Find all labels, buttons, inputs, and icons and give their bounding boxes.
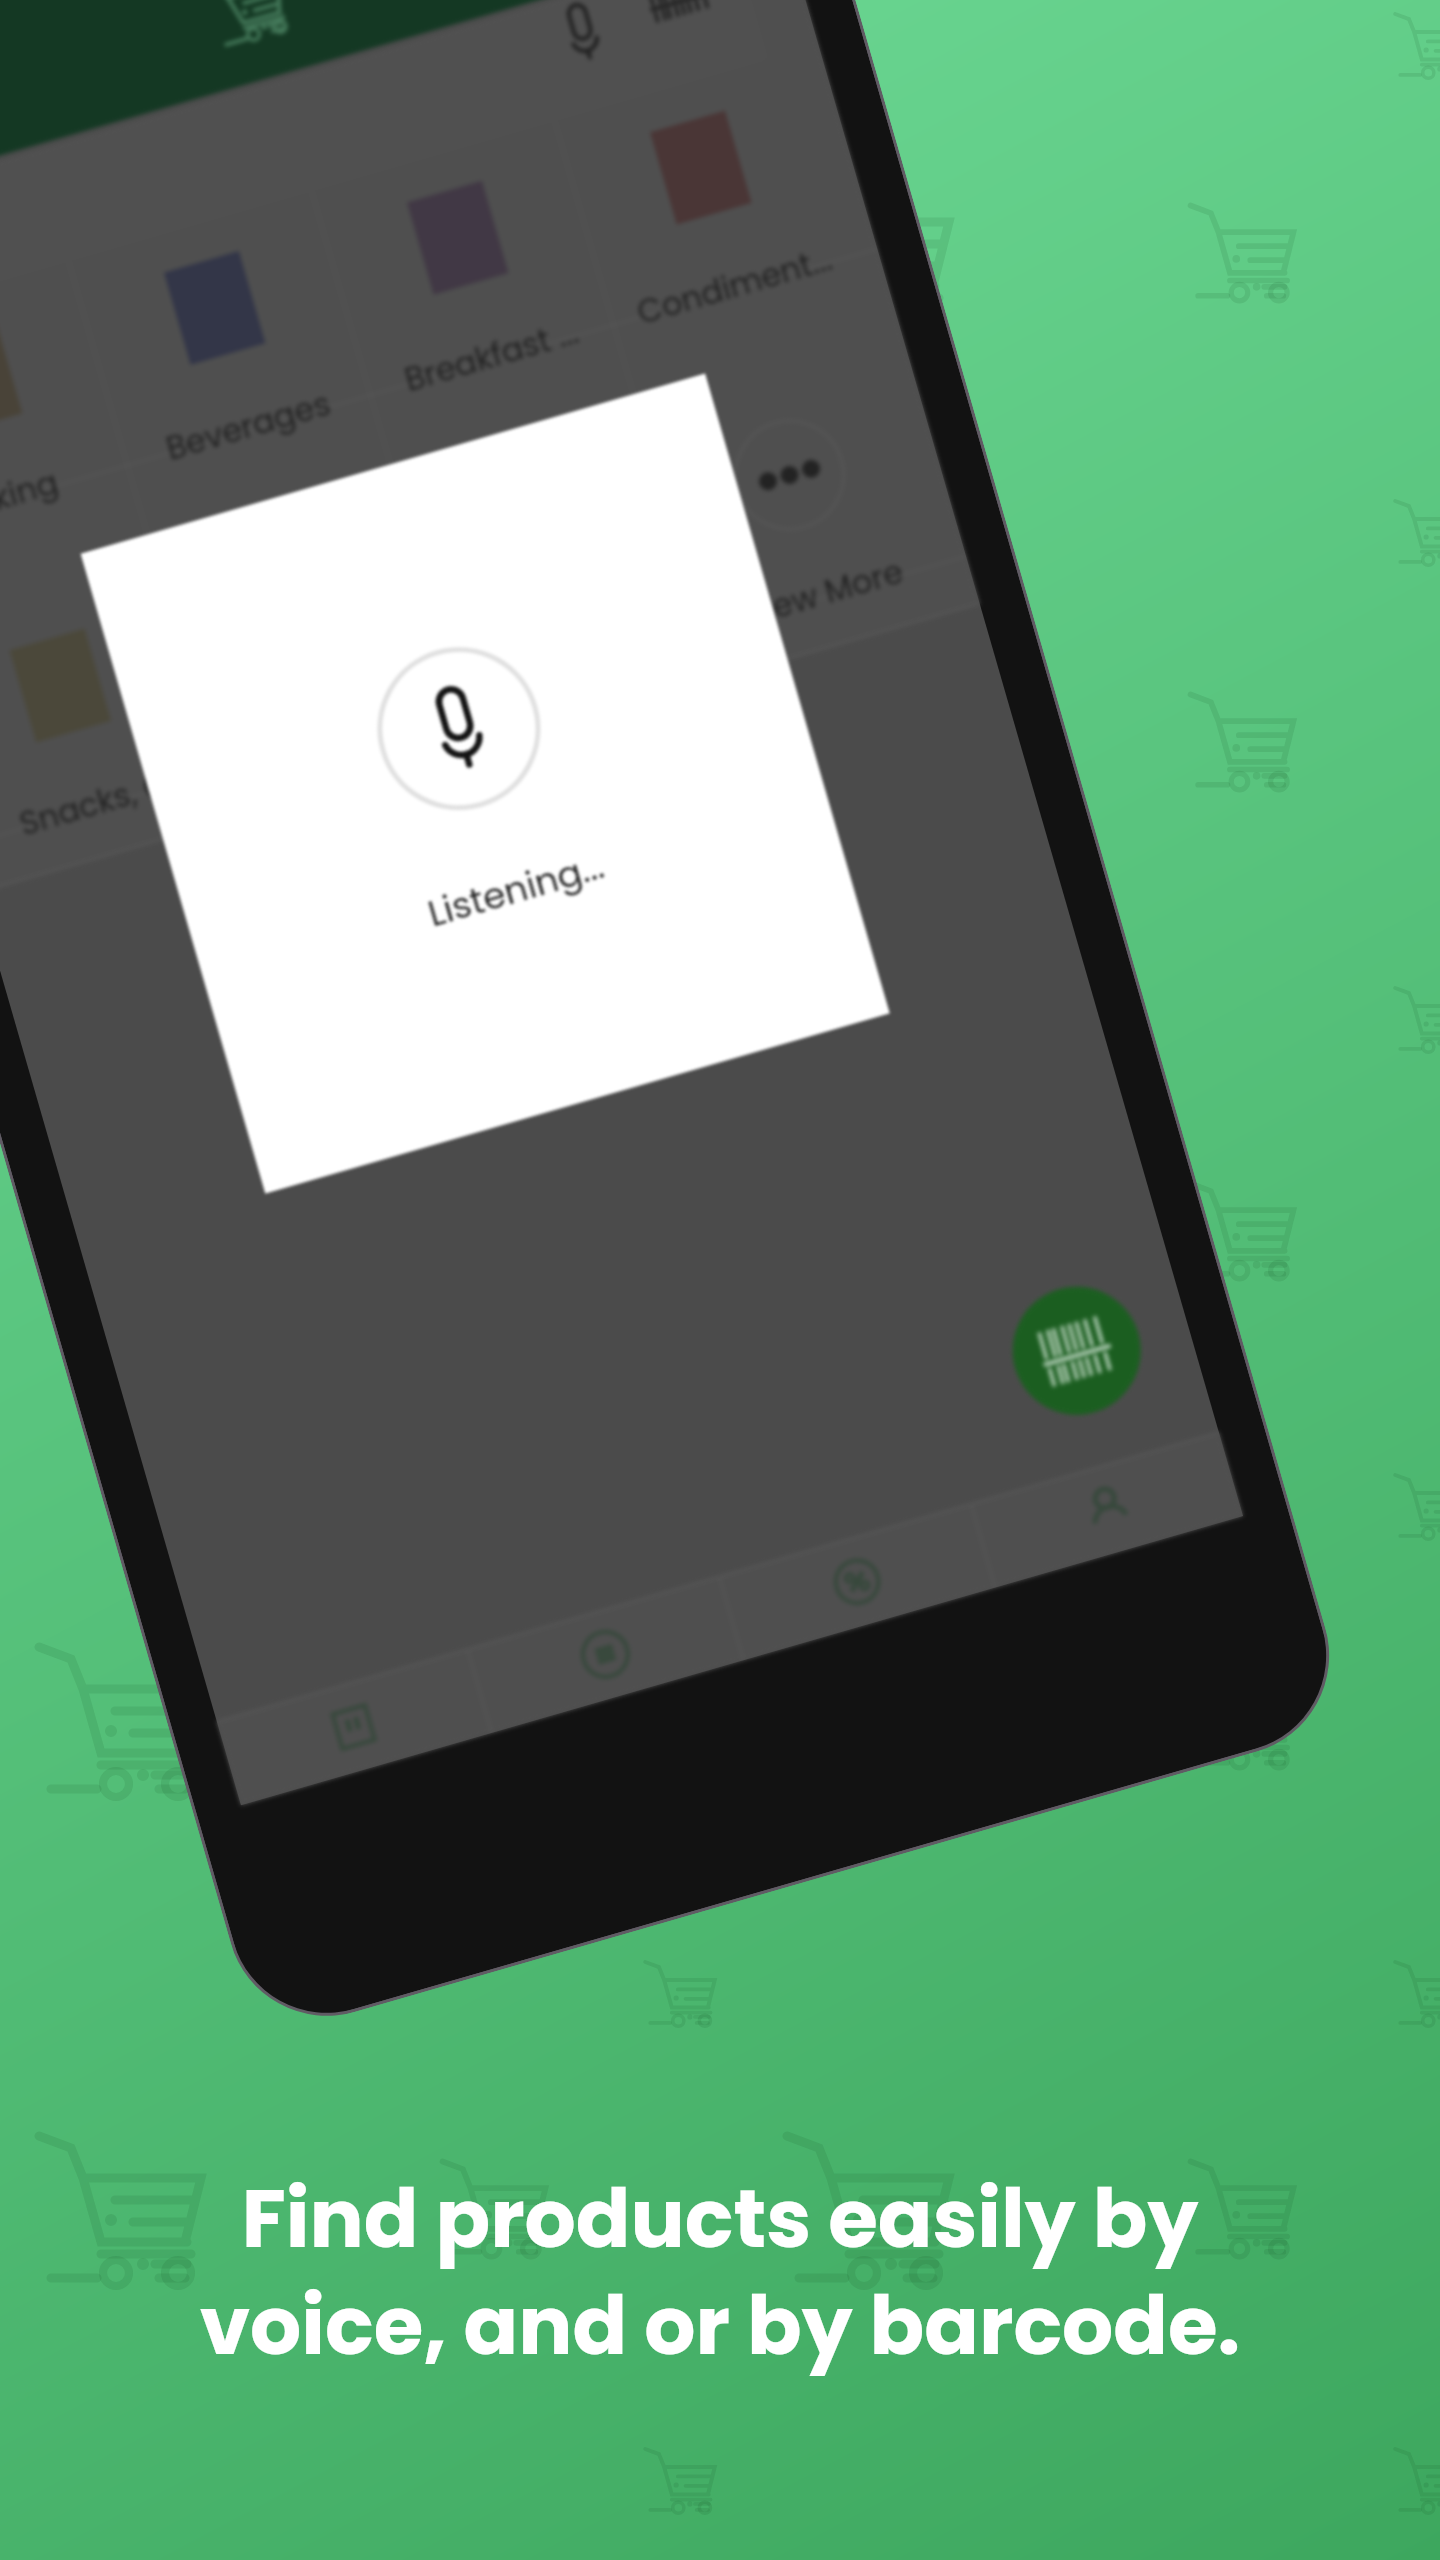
staticText: Deli — [452, 606, 708, 720]
button[interactable]: Tab 1 — [217, 1649, 491, 1805]
staticText: Snacks, C — [0, 747, 222, 860]
button[interactable] — [0, 159, 128, 536]
button[interactable]: Tab 2 — [468, 1576, 742, 1733]
button[interactable]: Microphone — [81, 373, 890, 1194]
button[interactable]: Voice search — [555, 0, 609, 64]
button[interactable]: Scan barcode — [642, 0, 718, 29]
staticText: Listening... — [196, 775, 835, 1003]
button[interactable] — [371, 326, 703, 703]
staticText: voice, and or by barcode. — [0, 2269, 1440, 2382]
staticText: Baking — [0, 439, 133, 553]
staticText: View More — [695, 536, 951, 650]
button[interactable]: Tab 3 — [720, 1503, 994, 1660]
staticText: Beverages — [120, 369, 376, 482]
button[interactable] — [0, 466, 217, 844]
button[interactable] — [282, 18, 614, 396]
staticText: Dairy — [209, 676, 465, 790]
staticText: Condiment... — [606, 229, 862, 342]
staticText: Breakfast ... — [363, 299, 619, 412]
button[interactable] — [0, 0, 769, 326]
button[interactable] — [614, 256, 946, 633]
button[interactable] — [39, 88, 371, 466]
staticText: Find products easily by — [0, 2162, 1440, 2275]
button[interactable] — [128, 396, 460, 773]
button[interactable]: Tab 4 — [972, 1432, 1243, 1587]
button[interactable]: Scan barcode — [997, 1271, 1156, 1430]
button[interactable] — [526, 0, 857, 326]
button[interactable]: Microphone — [357, 627, 560, 830]
